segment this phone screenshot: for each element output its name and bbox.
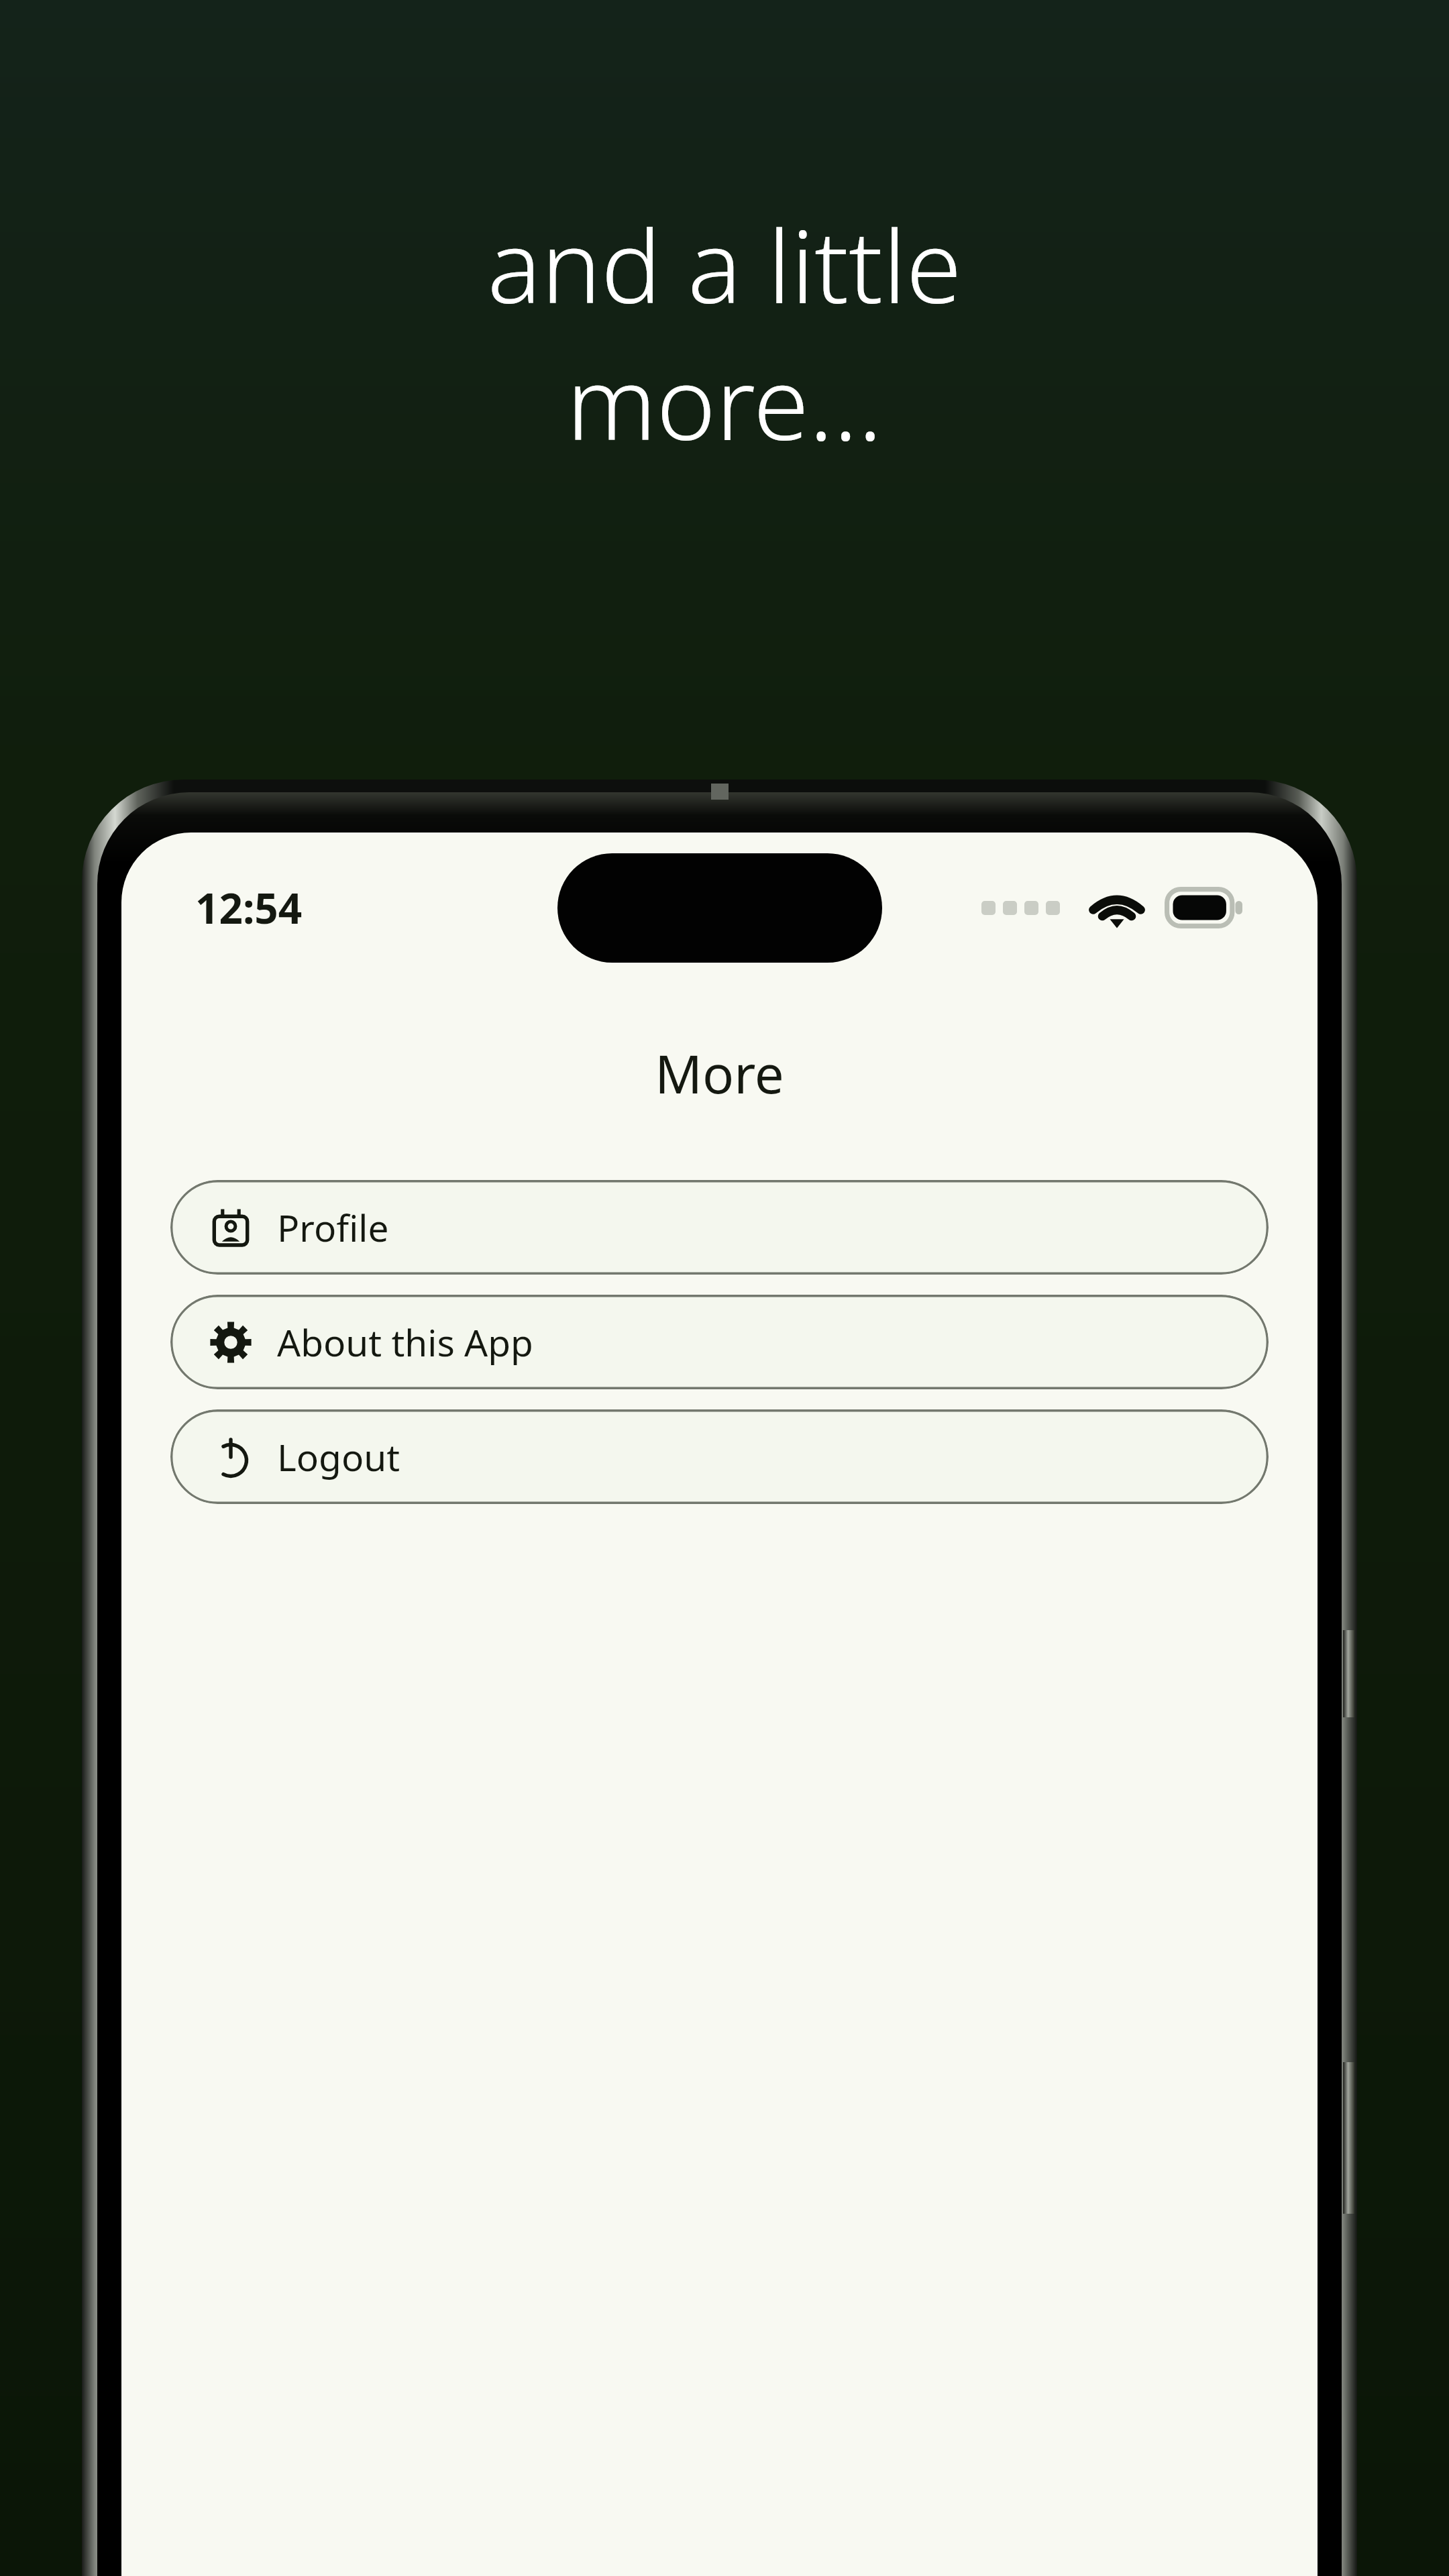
button[interactable]: Logout <box>170 1409 1269 1504</box>
button[interactable]: Profile <box>170 1180 1269 1275</box>
staticText: More <box>121 1038 1318 1109</box>
staticText: Profile <box>277 1202 389 1252</box>
staticText: and a little <box>487 196 962 333</box>
staticText: 12:54 <box>195 879 303 936</box>
staticText: Logout <box>277 1432 400 1482</box>
staticText: About this App <box>277 1317 533 1367</box>
button[interactable]: About this App <box>170 1295 1269 1389</box>
staticText: more… <box>566 333 883 470</box>
